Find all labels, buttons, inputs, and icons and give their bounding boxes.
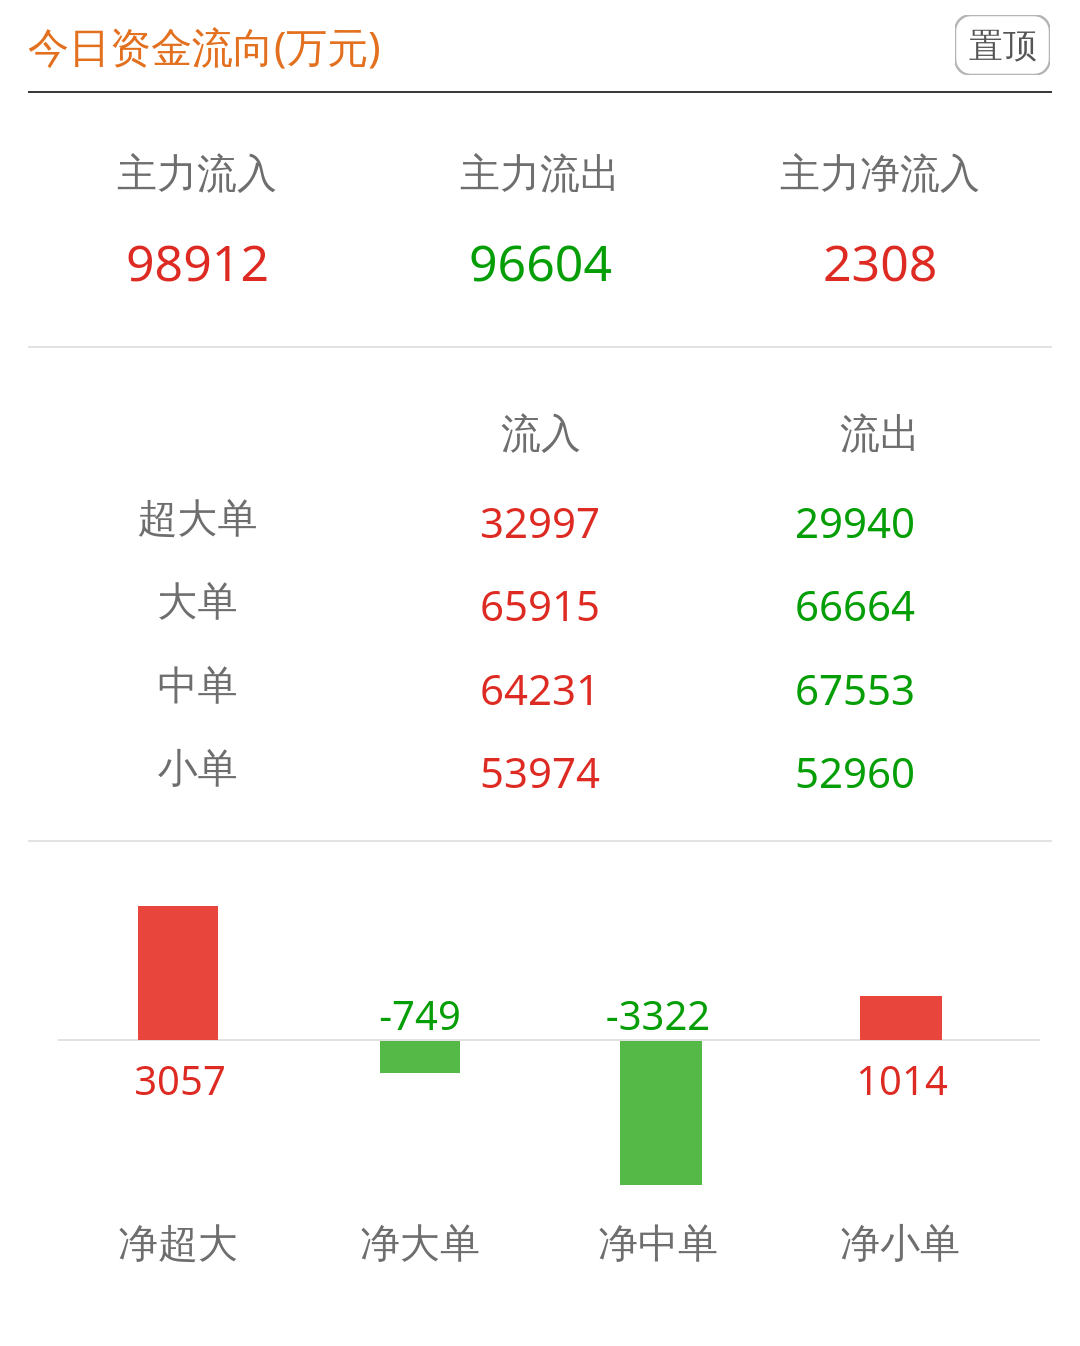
- staticText: 64231: [395, 660, 685, 717]
- staticText: 主力流入: [117, 148, 277, 198]
- staticText: 大单: [0, 576, 395, 626]
- button[interactable]: 小单: [0, 743, 1080, 800]
- staticText: 2308: [823, 228, 938, 296]
- staticText: 32997: [395, 493, 685, 550]
- staticText: 置顶: [969, 24, 1037, 67]
- staticText: 3057: [80, 1052, 280, 1106]
- staticText: 66664: [685, 576, 1025, 633]
- button[interactable]: 主力净流入: [695, 148, 1065, 296]
- staticText: 小单: [0, 743, 395, 793]
- staticText: 67553: [685, 660, 1025, 717]
- button[interactable]: 超大单: [0, 493, 1080, 550]
- button[interactable]: 今日资金流向(万元): [28, 18, 381, 74]
- staticText: 净大单: [320, 1218, 520, 1268]
- staticText: 超大单: [0, 493, 395, 543]
- staticText: 53974: [395, 743, 685, 800]
- staticText: 1014: [802, 1052, 1002, 1106]
- staticText: -3322: [558, 987, 758, 1041]
- staticText: 96604: [469, 228, 612, 296]
- button[interactable]: 大单: [0, 576, 1080, 633]
- staticText: 主力流出: [460, 148, 620, 198]
- staticText: 98912: [126, 228, 269, 296]
- staticText: 净中单: [558, 1218, 758, 1268]
- button[interactable]: 主力流入: [12, 148, 382, 296]
- staticText: 净超大: [78, 1218, 278, 1268]
- staticText: 中单: [0, 660, 395, 710]
- staticText: -749: [320, 987, 520, 1041]
- button[interactable]: 中单: [0, 660, 1080, 717]
- button[interactable]: 置顶: [955, 15, 1050, 75]
- staticText: 流出: [780, 408, 980, 458]
- staticText: 52960: [685, 743, 1025, 800]
- staticText: 今日资金流向(万元): [28, 18, 381, 74]
- staticText: 净小单: [800, 1218, 1000, 1268]
- staticText: 29940: [685, 493, 1025, 550]
- staticText: 流入: [441, 408, 641, 458]
- staticText: 65915: [395, 576, 685, 633]
- staticText: 主力净流入: [780, 148, 980, 198]
- button[interactable]: 主力流出: [355, 148, 725, 296]
